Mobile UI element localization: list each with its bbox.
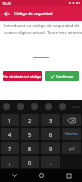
other: Delete [67,117,76,124]
other: Enter [68,145,75,152]
staticText: , [9,159,11,166]
staticText: 4 [8,131,12,138]
staticText: 8 [28,145,32,152]
button[interactable]: Clipboard [41,100,55,113]
button[interactable]: Voice input [55,100,69,113]
staticText: Confirmar [56,74,74,79]
button[interactable]: 3 [41,114,60,126]
staticText: He olvidado mi código [3,74,42,79]
button[interactable]: Recent apps [55,169,82,182]
staticText: Introduzca su código de seguridad de cua… [4,22,82,36]
button[interactable]: Hecho [62,128,81,140]
staticText: Código de seguridad [14,11,53,16]
staticText: 5 [28,131,32,138]
button[interactable]: Home [28,169,55,182]
button[interactable]: He olvidado mi código [3,71,42,81]
staticText: 6 [49,131,53,138]
staticText: 10:25 [2,1,11,6]
button[interactable]: 2 [21,114,39,126]
button[interactable]: Confirmar [45,71,79,81]
button[interactable]: 1 [1,114,19,126]
button[interactable]: Back [0,7,14,21]
button[interactable]: . [41,156,60,168]
button[interactable]: Emoji [0,100,13,113]
staticText: . [50,159,52,166]
button[interactable]: 8 [21,142,39,154]
staticText: 2 [28,117,32,124]
button[interactable]: Redo [27,100,41,113]
button[interactable]: Delete [62,114,81,126]
staticText: 0 [28,159,32,166]
button[interactable]: 4 [1,128,19,140]
staticText: 3 [49,117,53,124]
staticText: 7 [8,145,12,152]
staticText: 9 [49,145,53,152]
staticText: Hecho [65,131,78,137]
button[interactable]: Enter [62,142,81,154]
button[interactable]: , [1,156,19,168]
button[interactable]: 9 [41,142,60,154]
button[interactable]: Undo [13,100,27,113]
staticText: 1 [8,117,12,124]
button[interactable]: 5 [21,128,39,140]
button[interactable]: 0 [21,156,39,168]
button[interactable]: 7 [1,142,19,154]
button[interactable]: Hide keyboard [0,169,28,182]
button[interactable]: More options [69,100,82,113]
button[interactable]: 6 [41,128,60,140]
